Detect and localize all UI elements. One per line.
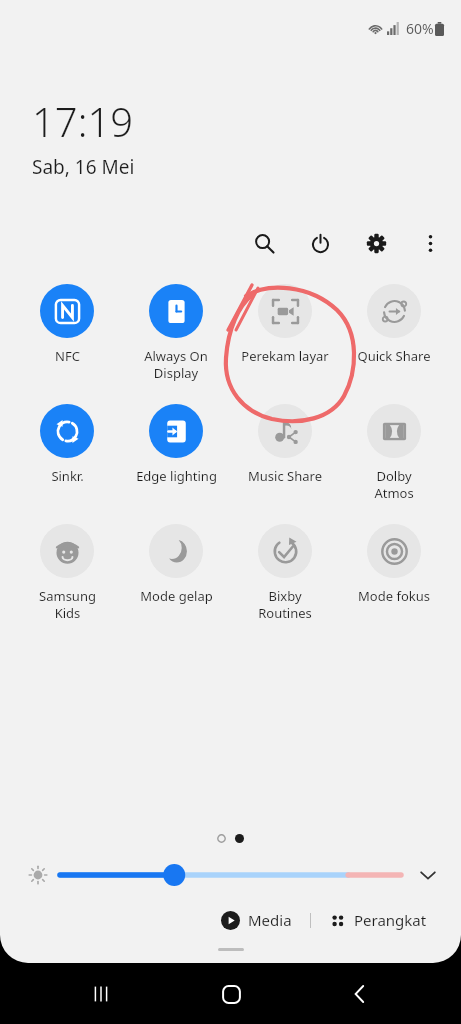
staticText: Sab, 16 Mei xyxy=(32,154,135,180)
staticText: 60% xyxy=(406,19,434,38)
button[interactable]: NFC xyxy=(17,284,117,365)
button[interactable]: Quick Share xyxy=(344,284,444,365)
button[interactable]: Recents xyxy=(73,966,129,1022)
staticText: Music Share xyxy=(248,467,322,485)
staticText: Samsung Kids xyxy=(39,587,96,622)
button[interactable]: Mode gelap xyxy=(126,524,226,605)
button[interactable]: Home xyxy=(203,966,259,1022)
button[interactable]: Bixby Routines xyxy=(235,524,335,622)
button[interactable]: Dolby Atmos xyxy=(344,404,444,502)
staticText: NFC xyxy=(55,347,80,365)
staticText: Mode fokus xyxy=(358,587,430,605)
button[interactable]: Search xyxy=(247,226,281,260)
staticText: Always On Display xyxy=(144,347,208,382)
staticText: Edge lighting xyxy=(136,467,217,485)
staticText: Dolby Atmos xyxy=(374,467,414,502)
staticText: Quick Share xyxy=(357,347,431,365)
button[interactable]: Perekam layar xyxy=(235,284,335,365)
button[interactable]: Settings xyxy=(359,226,393,260)
staticText: 17:19 xyxy=(32,94,134,148)
button[interactable]: Music Share xyxy=(235,404,335,485)
button[interactable]: Media xyxy=(217,906,296,934)
button[interactable]: Expand xyxy=(411,858,445,892)
button[interactable]: Always On Display xyxy=(126,284,226,382)
staticText: Mode gelap xyxy=(140,587,213,605)
button[interactable]: Perangkat xyxy=(325,906,431,934)
staticText: Perangkat xyxy=(354,910,427,930)
button[interactable]: Back xyxy=(332,966,388,1022)
staticText: Perekam layar xyxy=(241,347,329,365)
staticText: Media xyxy=(248,910,292,930)
button[interactable]: Mode fokus xyxy=(344,524,444,605)
staticText: Bixby Routines xyxy=(258,587,312,622)
button[interactable] xyxy=(60,862,401,888)
button[interactable]: Sinkr. xyxy=(17,404,117,485)
button[interactable]: Brightness xyxy=(22,859,54,891)
staticText: Sinkr. xyxy=(51,467,84,485)
button[interactable]: Samsung Kids xyxy=(17,524,117,622)
button[interactable]: More options xyxy=(413,226,447,260)
button[interactable]: Power xyxy=(303,226,337,260)
button[interactable]: Edge lighting xyxy=(126,404,226,485)
